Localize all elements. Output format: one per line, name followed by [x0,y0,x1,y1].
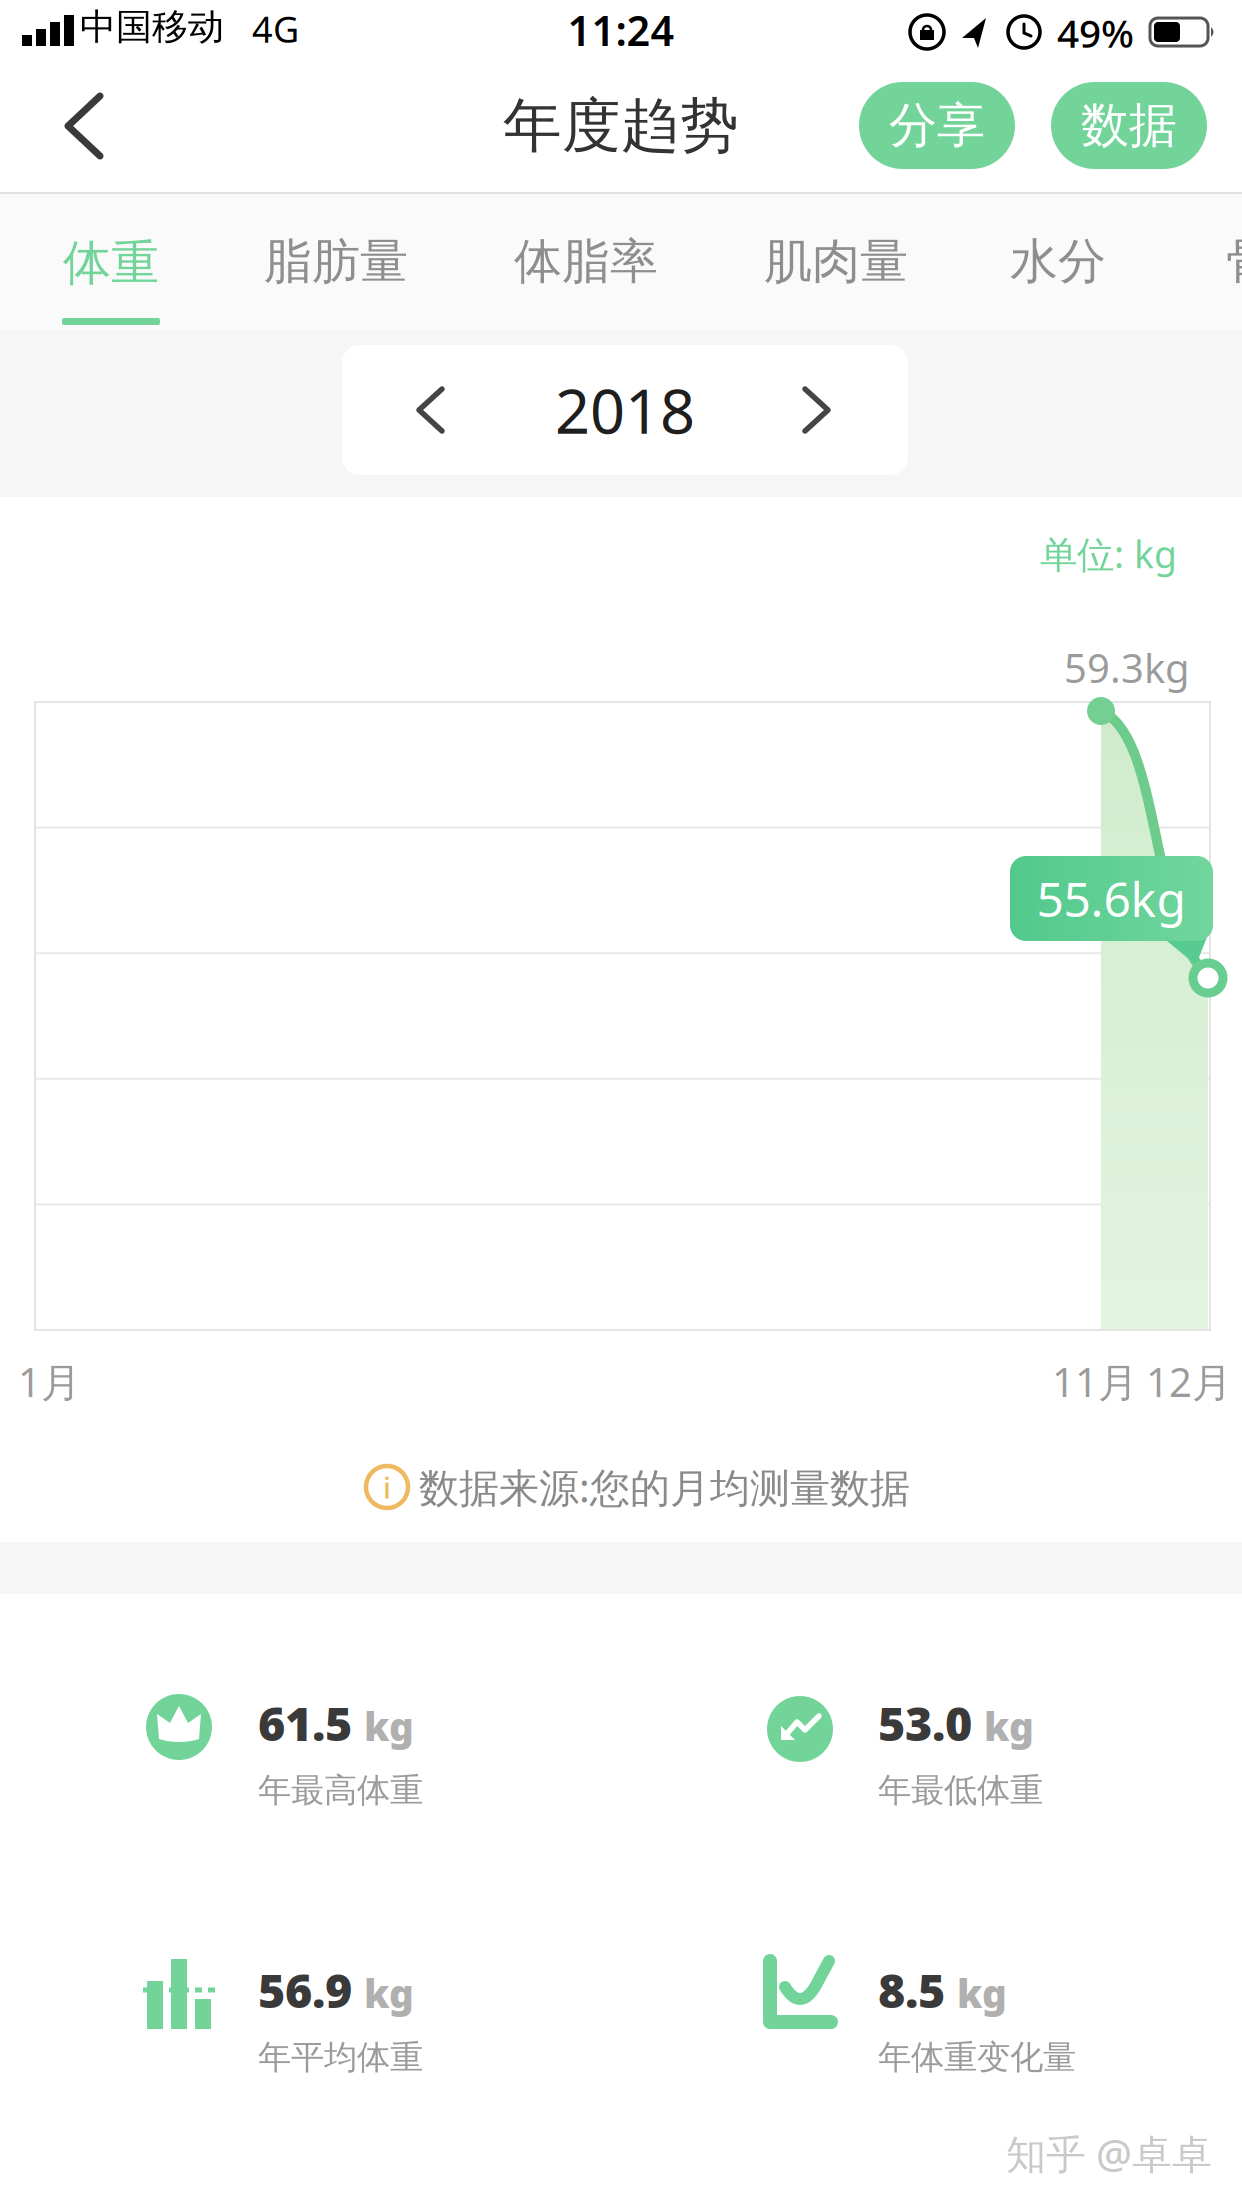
staticText: kg [984,1700,1034,1752]
button[interactable]: 分享 [859,82,1015,169]
staticText: 年最高体重 [258,1770,423,1811]
staticText: 体重 [63,233,159,292]
staticText: 脂肪量 [264,232,408,291]
staticText: kg [957,1967,1007,2019]
staticText: kg [364,1967,414,2019]
staticText: 骨量 [1226,232,1242,291]
staticText: 55.6kg [1036,867,1186,930]
staticText: 56.9 [258,1959,352,2021]
button[interactable]: Previous year [419,389,444,433]
staticText: 年最低体重 [878,1770,1043,1811]
staticText: 4G [252,5,299,53]
staticText: 49% [1057,7,1134,58]
staticText: 59.3kg [1064,641,1190,694]
staticText: 61.5 [258,1692,352,1754]
staticText: 11月 [1052,1355,1138,1408]
staticText: 体脂率 [514,232,658,291]
staticText: 肌肉量 [764,232,908,291]
button[interactable]: 数据 [1051,82,1207,169]
staticText: 知乎 @卓卓 [1006,2127,1212,2180]
staticText: 53.0 [878,1692,972,1754]
button[interactable]: 肌肉量 [764,232,908,291]
staticText: 分享 [889,96,985,155]
button[interactable]: 脂肪量 [264,232,408,291]
staticText: 数据来源:您的月均测量数据 [419,1460,910,1513]
staticText: 8.5 [878,1959,945,2021]
staticText: 数据 [1081,96,1177,155]
staticText: 单位: kg [1040,529,1177,579]
button[interactable]: 体重 [62,208,160,325]
staticText: 水分 [1010,232,1106,291]
staticText: kg [364,1700,414,1752]
staticText: 1月 [18,1355,81,1408]
staticText: 中国移动 [80,5,224,49]
button[interactable]: 骨量 [1226,232,1242,291]
staticText: 2018 [555,369,695,451]
staticText: 11:24 [567,3,674,57]
staticText: i [383,1467,391,1506]
button[interactable]: Next year [805,389,830,433]
staticText: 12月 [1146,1355,1232,1408]
button[interactable]: 体脂率 [514,232,658,291]
button[interactable]: 水分 [1010,232,1106,291]
staticText: 年度趋势 [503,90,739,162]
staticText: 年平均体重 [258,2037,423,2078]
staticText: 年体重变化量 [878,2037,1076,2078]
button[interactable]: Back [0,62,140,192]
